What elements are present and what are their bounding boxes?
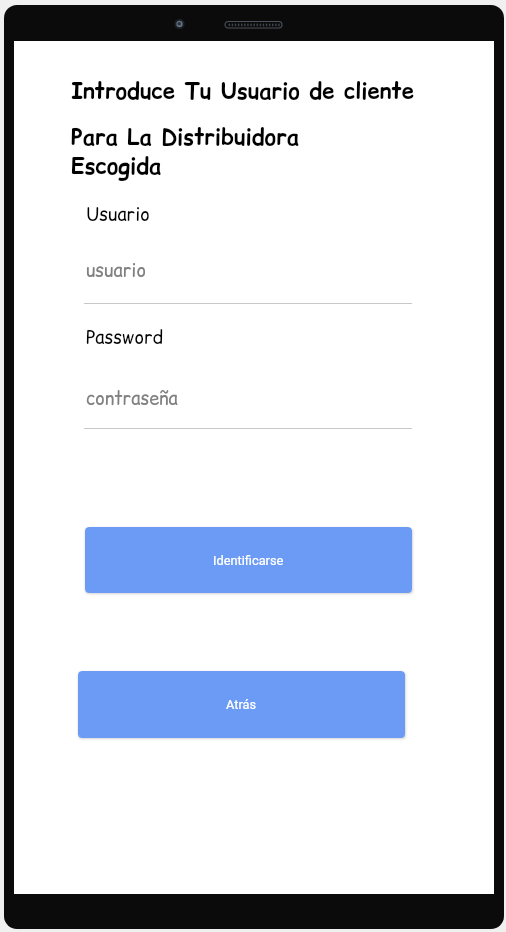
staticText: Password (86, 325, 164, 350)
staticText: Identificarse (213, 553, 284, 568)
staticText: usuario (86, 258, 146, 283)
staticText: Introduce Tu Usuario de cliente (71, 76, 414, 107)
button[interactable]: usuario (84, 247, 412, 304)
staticText: contraseña (86, 386, 178, 411)
staticText: Atrás (226, 697, 257, 712)
staticText: Usuario (86, 202, 150, 227)
button[interactable]: Identificarse (85, 527, 412, 593)
button[interactable]: Atrás (78, 671, 405, 738)
staticText: Escogida (71, 151, 162, 182)
button[interactable]: contraseña (84, 375, 412, 429)
staticText: Para La Distribuidora (71, 122, 299, 153)
